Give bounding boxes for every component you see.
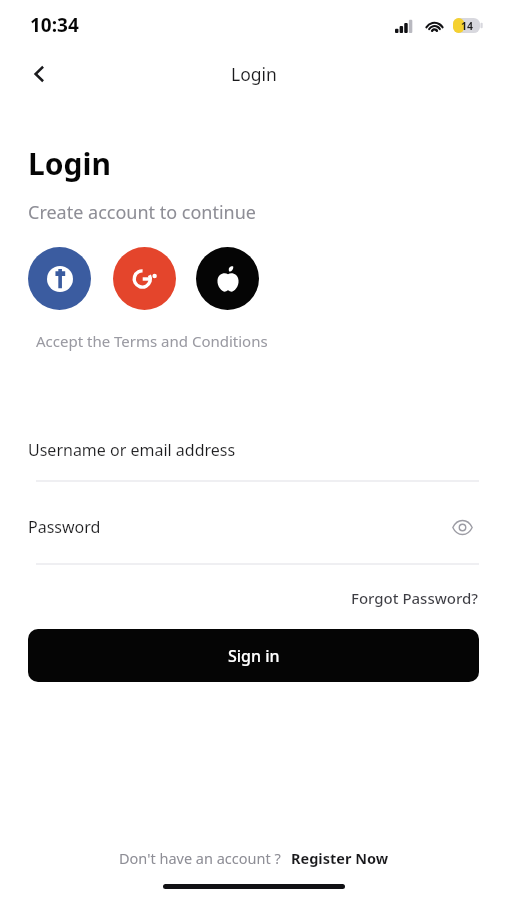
button[interactable]: Password	[28, 516, 101, 538]
button[interactable]: Username or email address	[28, 439, 236, 461]
button[interactable]: Forgot Password?	[351, 588, 479, 608]
button[interactable]: Show password	[445, 510, 479, 544]
staticText: Register Now	[291, 848, 389, 868]
staticText: 10:34	[30, 12, 79, 38]
staticText: Sign in	[228, 645, 280, 667]
button[interactable]: Sign in with Google	[113, 247, 176, 310]
staticText: Forgot Password?	[351, 588, 479, 608]
staticText: 14	[461, 19, 474, 33]
staticText: Don't have an account ?	[119, 848, 281, 868]
button[interactable]: Sign in with Apple	[196, 247, 259, 310]
button[interactable]: Sign in with Facebook	[28, 247, 91, 310]
staticText: Login	[231, 62, 277, 86]
staticText: Login	[28, 143, 111, 184]
staticText: Accept the Terms and Conditions	[36, 331, 268, 351]
button[interactable]: Accept the Terms and Conditions	[36, 331, 268, 351]
button[interactable]: Register Now	[291, 848, 389, 868]
staticText: Create account to continue	[28, 200, 256, 225]
button[interactable]: Sign in	[28, 629, 479, 682]
button[interactable]: Back	[18, 53, 60, 95]
